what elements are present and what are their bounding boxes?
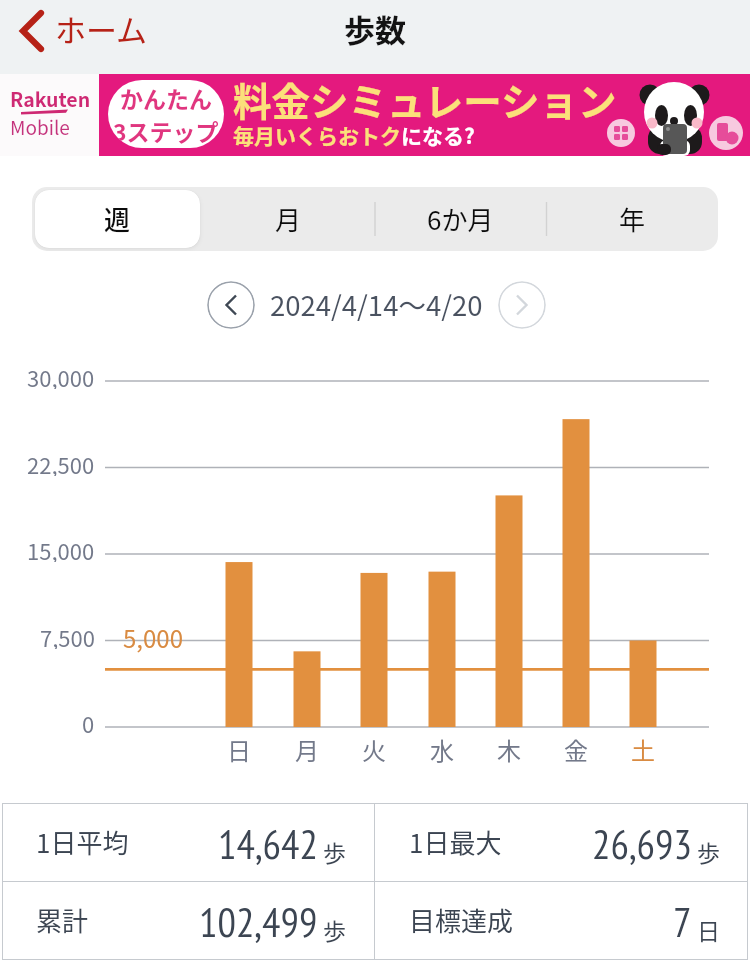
button[interactable]: 月 [203, 187, 374, 251]
staticText: 30,000 [27, 361, 95, 389]
button[interactable]: 1日最大 [375, 804, 748, 881]
staticText: 6か月 [427, 200, 494, 238]
button[interactable]: 週 [32, 187, 203, 251]
staticText: 毎月いくらおトク [233, 120, 401, 150]
staticText: 7,500 [40, 621, 95, 649]
staticText: 週 [104, 200, 131, 238]
button[interactable]: Back to home [11, 1, 156, 60]
staticText: 26,693 [592, 817, 692, 870]
staticText: 水 [430, 732, 454, 767]
staticText: 14,642 [218, 817, 318, 870]
staticText: ホーム [55, 6, 148, 51]
staticText: 5,000 [123, 620, 183, 655]
staticText: 15,000 [27, 534, 95, 562]
button[interactable]: Previous week [207, 281, 255, 329]
staticText: 月 [275, 200, 302, 238]
staticText: 歩数 [344, 6, 406, 51]
staticText: 年 [619, 200, 646, 238]
staticText: Rakuten [10, 84, 91, 112]
staticText: かんたん [120, 81, 212, 114]
staticText: 歩 [323, 835, 346, 868]
staticText: 木 [497, 732, 521, 767]
staticText: 料金シミュレーション [233, 71, 617, 127]
staticText: 日 [227, 732, 251, 767]
button[interactable]: 目標達成 [375, 882, 748, 959]
button[interactable]: Rakuten Mobile advertisement [0, 74, 750, 156]
staticText: 7 [673, 895, 692, 948]
staticText: 歩 [697, 835, 720, 868]
staticText: 火 [362, 732, 386, 767]
button[interactable]: 年 [546, 187, 718, 251]
button[interactable]: Next week [498, 281, 546, 329]
button[interactable]: 累計 [2, 882, 374, 959]
staticText: 累計 [36, 901, 89, 939]
staticText: 金 [564, 732, 588, 767]
button[interactable]: 1日平均 [2, 804, 374, 881]
staticText: 3ステップ [113, 114, 219, 147]
staticText: 月 [295, 732, 319, 767]
staticText: 日 [697, 913, 720, 946]
staticText: 1日平均 [36, 823, 129, 861]
button[interactable]: 6か月 [374, 187, 546, 251]
staticText: 土 [631, 732, 655, 767]
staticText: 102,499 [199, 895, 318, 948]
staticText: 2024/4/14～4/20 [270, 284, 483, 324]
staticText: 目標達成 [409, 901, 514, 939]
staticText: 1日最大 [409, 823, 502, 861]
staticText: Mobile [10, 113, 70, 141]
staticText: になる? [401, 120, 475, 150]
staticText: 歩 [323, 913, 346, 946]
staticText: 0 [82, 707, 95, 735]
staticText: 22,500 [27, 448, 95, 476]
